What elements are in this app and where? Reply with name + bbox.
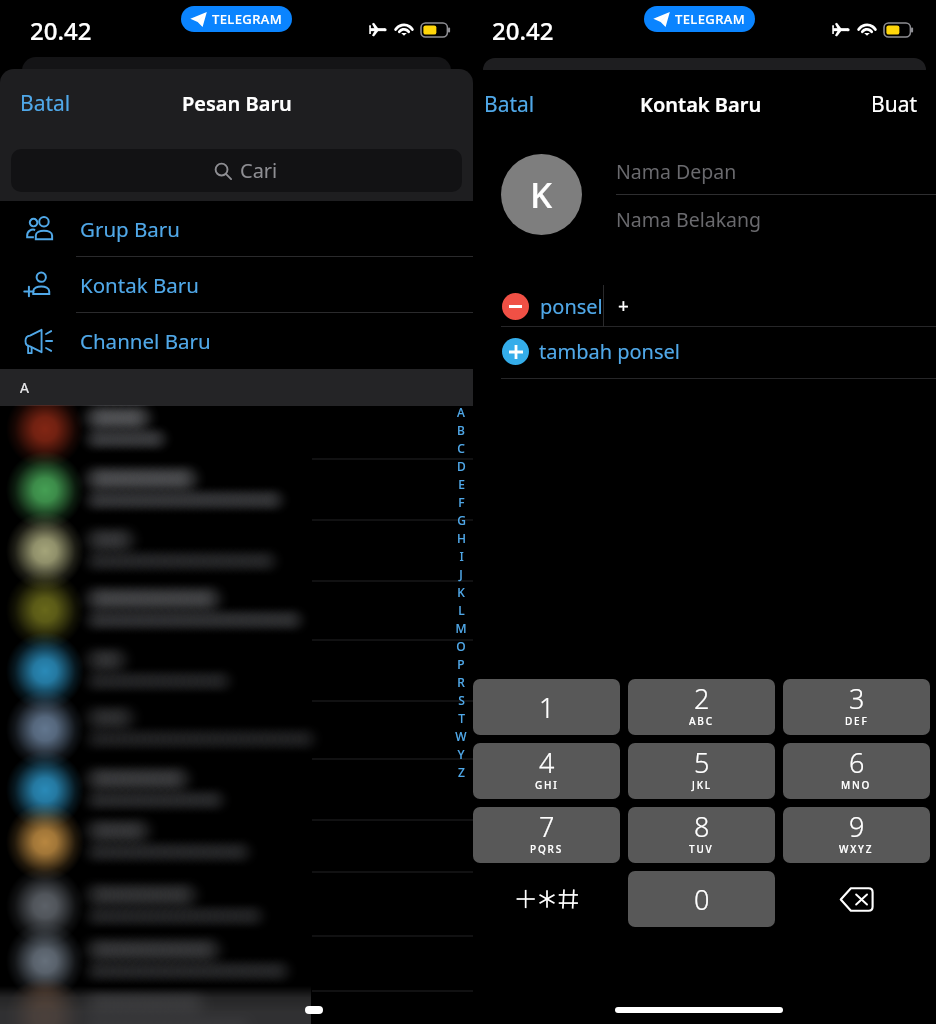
button[interactable]: 7 [473, 807, 620, 863]
button[interactable] [0, 405, 473, 463]
staticText: 0 [694, 881, 710, 918]
button[interactable]: 0 [628, 871, 775, 927]
button[interactable]: Add contact photo [501, 154, 582, 235]
staticText: 8 [694, 808, 710, 845]
staticText: ponsel [540, 293, 603, 320]
staticText: A [457, 404, 465, 422]
staticText: G [457, 512, 466, 530]
button[interactable] [0, 463, 473, 521]
button[interactable]: Plus star hash [473, 871, 620, 927]
button[interactable] [0, 579, 473, 637]
staticText: M [455, 620, 467, 638]
staticText: C [457, 440, 465, 458]
button[interactable]: 3 [783, 679, 930, 735]
button[interactable]: 4 [473, 743, 620, 799]
button[interactable]: 2 [628, 679, 775, 735]
button[interactable] [0, 695, 473, 753]
staticText: 1 [539, 689, 555, 726]
staticText: MNO [841, 778, 872, 792]
button[interactable]: Batal [0, 69, 100, 137]
staticText: W [455, 728, 467, 746]
staticText: DEF [845, 714, 869, 728]
staticText: Batal [484, 90, 535, 119]
button[interactable] [0, 637, 473, 695]
staticText: Z [458, 764, 465, 782]
staticText: B [457, 422, 465, 440]
staticText: 9 [849, 808, 865, 845]
staticText: Batal [20, 89, 71, 118]
staticText: E [458, 476, 465, 494]
button[interactable]: 8 [628, 807, 775, 863]
button[interactable] [0, 985, 473, 1024]
staticText: WXYZ [839, 842, 874, 856]
staticText: A [20, 378, 29, 397]
staticText: Pesan Baru [182, 90, 292, 117]
button[interactable] [0, 869, 473, 927]
staticText: R [457, 674, 465, 692]
button[interactable]: Alphabet index [455, 404, 467, 782]
staticText: Nama Belakang [616, 206, 762, 233]
staticText: PQRS [530, 842, 563, 856]
staticText: 5 [694, 744, 710, 781]
button[interactable]: Cari [11, 149, 462, 192]
button[interactable]: 1 [473, 679, 620, 735]
staticText: K [530, 171, 553, 219]
button[interactable]: Delete [783, 871, 930, 927]
button[interactable]: 6 [783, 743, 930, 799]
staticText: 3 [849, 680, 865, 717]
staticText: Grup Baru [80, 215, 180, 243]
button[interactable] [0, 753, 473, 811]
staticText: TELEGRAM [675, 10, 746, 28]
staticText: Buat [871, 90, 917, 119]
button[interactable]: 5 [628, 743, 775, 799]
staticText: 6 [849, 744, 865, 781]
button[interactable]: Kontak Baru [0, 257, 473, 313]
button[interactable]: ponsel [473, 285, 936, 327]
button[interactable]: 9 [783, 807, 930, 863]
button[interactable]: Nama Depan [616, 148, 936, 195]
staticText: Kontak Baru [640, 91, 762, 118]
button[interactable] [0, 521, 473, 579]
staticText: JKL [692, 778, 712, 792]
staticText: 4 [539, 744, 555, 781]
staticText: O [456, 638, 466, 656]
staticText: + [618, 293, 629, 319]
button[interactable]: Batal [473, 69, 568, 139]
staticText: Nama Depan [616, 158, 737, 185]
staticText: 7 [539, 808, 555, 845]
staticText: ABC [689, 714, 714, 728]
staticText: 2 [694, 680, 710, 717]
button[interactable]: Buat [851, 69, 936, 139]
staticText: K [457, 584, 465, 602]
staticText: 20.42 [30, 14, 92, 47]
button[interactable] [0, 811, 473, 869]
staticText: H [457, 530, 466, 548]
staticText: S [458, 692, 465, 710]
staticText: Kontak Baru [80, 271, 199, 299]
staticText: L [458, 602, 465, 620]
staticText: TELEGRAM [212, 10, 283, 28]
button[interactable]: Grup Baru [0, 201, 473, 257]
button[interactable] [0, 927, 473, 985]
staticText: D [457, 458, 466, 476]
staticText: GHI [535, 778, 559, 792]
staticText: P [457, 656, 465, 674]
staticText: 20.42 [492, 14, 554, 47]
staticText: F [458, 494, 465, 512]
button[interactable]: Channel Baru [0, 313, 473, 369]
staticText: Channel Baru [80, 327, 211, 355]
button[interactable]: tambah ponsel [473, 327, 936, 379]
button[interactable]: Nama Belakang [616, 196, 936, 243]
staticText: TUV [689, 842, 714, 856]
staticText: J [459, 566, 463, 584]
staticText: T [458, 710, 465, 728]
staticText: Y [457, 746, 465, 764]
staticText: Cari [240, 157, 278, 184]
staticText: I [459, 548, 464, 566]
staticText: tambah ponsel [539, 338, 680, 365]
